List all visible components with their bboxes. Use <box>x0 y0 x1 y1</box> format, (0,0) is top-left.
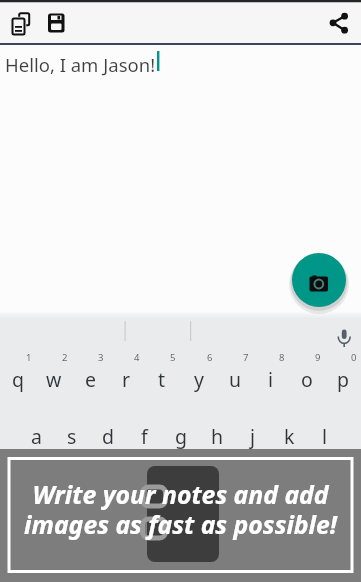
button[interactable] <box>325 8 355 38</box>
staticText: a <box>31 423 42 450</box>
staticText: 4 <box>134 351 140 364</box>
staticText: Hello, I am Jason! <box>5 52 156 77</box>
button[interactable] <box>6 8 36 38</box>
staticText: l <box>322 423 328 450</box>
staticText: u <box>229 366 242 393</box>
staticText: e <box>85 366 96 393</box>
staticText: r <box>122 366 131 393</box>
staticText: k <box>284 423 295 450</box>
staticText: q <box>12 366 24 393</box>
staticText: g <box>175 423 187 450</box>
staticText: s <box>67 423 77 450</box>
staticText: i <box>268 366 274 393</box>
staticText: j <box>250 423 256 450</box>
staticText: Write your notes and add images as fast … <box>0 477 361 541</box>
staticText: 1 <box>26 351 32 364</box>
staticText: 5 <box>170 351 176 364</box>
staticText: t <box>158 366 166 393</box>
staticText: 7 <box>243 351 249 364</box>
staticText: f <box>141 423 148 450</box>
staticText: p <box>337 366 349 393</box>
staticText: 6 <box>207 351 213 364</box>
staticText: 9 <box>315 351 321 364</box>
staticText: 3 <box>98 351 104 364</box>
staticText: w <box>46 366 62 393</box>
staticText: y <box>194 366 204 393</box>
staticText: d <box>102 423 114 450</box>
staticText: 0 <box>351 351 357 364</box>
staticText: 2 <box>62 351 68 364</box>
button[interactable] <box>42 8 72 38</box>
staticText: h <box>211 423 224 450</box>
button[interactable] <box>292 253 346 307</box>
staticText: o <box>301 366 313 393</box>
staticText: 8 <box>279 351 285 364</box>
